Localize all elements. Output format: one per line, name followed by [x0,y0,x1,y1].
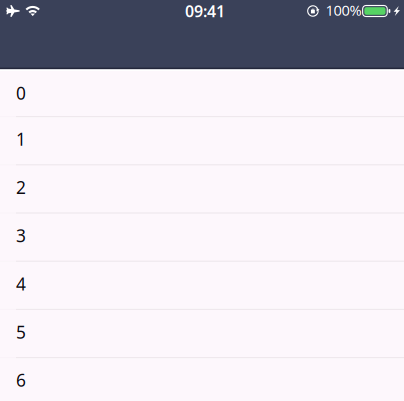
button[interactable]: 4 [0,262,404,310]
staticText: 4 [16,272,26,295]
staticText: 0 [16,81,26,104]
button[interactable]: 6 [0,358,404,401]
button[interactable]: 5 [0,310,404,358]
button[interactable]: 1 [0,117,404,165]
staticText: 5 [16,320,26,343]
button[interactable]: 3 [0,213,404,262]
button[interactable]: 2 [0,165,404,213]
staticText: 1 [16,128,26,151]
staticText: 3 [16,224,26,247]
staticText: 2 [16,176,26,199]
staticText: 6 [16,369,26,392]
staticText: 100% [325,0,361,20]
button[interactable]: 0 [0,71,404,117]
staticText: 09:41 [185,0,225,22]
